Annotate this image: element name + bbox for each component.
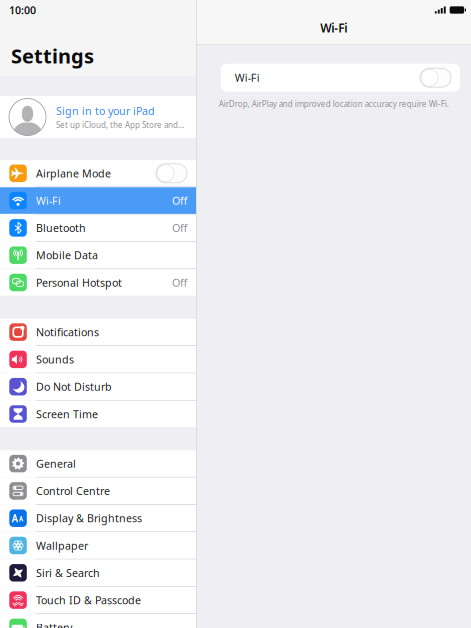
staticText: Off bbox=[172, 221, 187, 235]
staticText: Sounds bbox=[36, 352, 74, 366]
staticText: Wi-Fi bbox=[235, 71, 260, 85]
staticText: Screen Time bbox=[36, 407, 98, 421]
button[interactable]: Wi-Fi bbox=[221, 64, 460, 92]
staticText: General bbox=[36, 456, 76, 471]
staticText: Wallpaper bbox=[36, 538, 88, 553]
button[interactable]: Sounds bbox=[0, 346, 196, 373]
button[interactable]: Touch ID & Passcode bbox=[0, 587, 196, 613]
button[interactable]: Sign in to your iPad bbox=[0, 96, 196, 138]
button[interactable]: Mobile Data bbox=[0, 242, 196, 268]
button[interactable]: Wallpaper bbox=[0, 532, 196, 559]
button[interactable]: Screen Time bbox=[0, 401, 196, 427]
button[interactable]: Siri & Search bbox=[0, 559, 196, 586]
button[interactable]: Personal Hotspot bbox=[0, 269, 196, 296]
button[interactable]: Bluetooth bbox=[0, 215, 196, 241]
staticText: Control Centre bbox=[36, 484, 110, 498]
button[interactable]: General bbox=[0, 450, 196, 477]
staticText: Wi-Fi bbox=[320, 20, 347, 36]
staticText: Wi-Fi bbox=[36, 193, 61, 208]
staticText: Airplane Mode bbox=[36, 166, 111, 180]
staticText: Do Not Disturb bbox=[36, 380, 112, 394]
staticText: Mobile Data bbox=[36, 248, 98, 262]
button[interactable]: Display & Brightness bbox=[0, 505, 196, 531]
staticText: AirDrop, AirPlay and improved location a… bbox=[219, 99, 449, 109]
button[interactable]: Do Not Disturb bbox=[0, 373, 196, 400]
button[interactable]: Airplane Mode bbox=[0, 160, 196, 187]
staticText: Off bbox=[172, 275, 187, 290]
staticText: Sign in to your iPad bbox=[56, 104, 155, 118]
button[interactable]: Battery bbox=[0, 614, 196, 628]
staticText: Touch ID & Passcode bbox=[36, 593, 141, 607]
staticText: Settings bbox=[11, 42, 94, 69]
staticText: Battery bbox=[36, 620, 72, 628]
staticText: 10:00 bbox=[9, 3, 36, 17]
staticText: Personal Hotspot bbox=[36, 275, 122, 290]
staticText: Display & Brightness bbox=[36, 511, 142, 525]
staticText: Siri & Search bbox=[36, 566, 100, 580]
button[interactable]: Wi-Fi bbox=[0, 187, 196, 214]
staticText: Bluetooth bbox=[36, 221, 86, 235]
button[interactable]: Notifications bbox=[0, 319, 196, 345]
staticText: Notifications bbox=[36, 325, 99, 339]
staticText: Off bbox=[172, 193, 187, 208]
button[interactable]: Control Centre bbox=[0, 478, 196, 504]
staticText: Set up iCloud, the App Store and… bbox=[56, 119, 184, 130]
